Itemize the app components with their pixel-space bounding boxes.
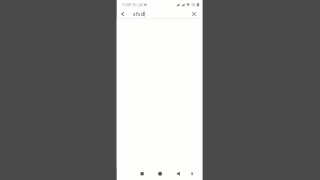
button[interactable]: Switch keyboard xyxy=(187,168,197,180)
button[interactable]: Back xyxy=(169,168,187,180)
staticText: Fri 24 xyxy=(132,2,142,7)
button[interactable]: Home xyxy=(151,168,169,180)
staticText: 11:09 xyxy=(122,2,131,7)
staticText: sfsd xyxy=(133,10,144,18)
button[interactable]: Clear xyxy=(189,9,200,18)
staticText: 96 xyxy=(191,2,195,7)
button[interactable]: Back xyxy=(117,9,128,18)
button[interactable]: Recent apps xyxy=(133,168,151,180)
